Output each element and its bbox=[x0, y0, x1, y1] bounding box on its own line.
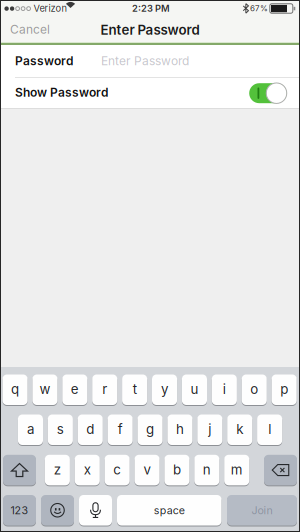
staticText: z bbox=[54, 462, 61, 477]
staticText: p bbox=[280, 381, 288, 397]
button[interactable]: l bbox=[257, 414, 282, 446]
staticText: 123 bbox=[10, 504, 28, 517]
staticText: m bbox=[231, 462, 243, 477]
button[interactable]: z bbox=[45, 455, 70, 486]
button[interactable]: j bbox=[197, 414, 222, 446]
button[interactable]: w bbox=[32, 374, 57, 406]
staticText: Enter Password bbox=[100, 22, 199, 38]
button[interactable]: space bbox=[117, 495, 221, 526]
button[interactable]: s bbox=[48, 414, 73, 446]
button[interactable]: o bbox=[242, 374, 267, 406]
staticText: u bbox=[190, 381, 198, 397]
button[interactable]: b bbox=[164, 455, 189, 486]
button[interactable]: 123 bbox=[3, 495, 36, 526]
button[interactable] bbox=[3, 455, 36, 486]
staticText: q bbox=[11, 381, 19, 397]
button[interactable]: a bbox=[18, 414, 43, 446]
staticText: Enter Password bbox=[101, 54, 189, 68]
button[interactable] bbox=[41, 495, 74, 526]
button[interactable]: v bbox=[134, 455, 160, 486]
staticText: e bbox=[71, 381, 79, 397]
button[interactable]: f bbox=[108, 414, 133, 446]
staticText: r bbox=[102, 381, 107, 397]
button[interactable]: n bbox=[194, 455, 219, 486]
button[interactable]: e bbox=[62, 374, 87, 406]
staticText: i bbox=[223, 381, 226, 397]
button[interactable]: Join bbox=[227, 495, 297, 526]
staticText: Join bbox=[251, 504, 272, 517]
button[interactable] bbox=[249, 83, 287, 104]
staticText: o bbox=[250, 381, 258, 397]
button[interactable]: k bbox=[227, 414, 252, 446]
staticText: v bbox=[144, 462, 151, 477]
staticText: t bbox=[133, 381, 137, 397]
button[interactable] bbox=[79, 495, 112, 526]
staticText: y bbox=[161, 381, 168, 397]
button[interactable]: r bbox=[92, 374, 117, 406]
button[interactable]: q bbox=[2, 374, 28, 406]
staticText: n bbox=[203, 462, 211, 477]
staticText: c bbox=[113, 462, 121, 477]
staticText: Show Password bbox=[15, 85, 108, 100]
button[interactable]: g bbox=[137, 414, 163, 446]
button[interactable]: m bbox=[224, 455, 249, 486]
staticText: w bbox=[39, 381, 50, 397]
staticText: b bbox=[173, 462, 181, 477]
staticText: l bbox=[268, 421, 271, 437]
button[interactable]: Password bbox=[0, 45, 300, 77]
staticText: a bbox=[27, 421, 34, 437]
button[interactable]: h bbox=[167, 414, 192, 446]
staticText: k bbox=[236, 421, 243, 437]
staticText: 67% bbox=[250, 4, 268, 13]
button[interactable]: u bbox=[182, 374, 207, 406]
staticText: g bbox=[146, 421, 154, 437]
button[interactable]: Cancel bbox=[10, 16, 70, 43]
staticText: x bbox=[84, 462, 91, 477]
button[interactable]: d bbox=[78, 414, 103, 446]
staticText: j bbox=[208, 421, 211, 437]
staticText: 2:23 PM bbox=[132, 3, 170, 14]
button[interactable]: y bbox=[152, 374, 177, 406]
staticText: d bbox=[86, 421, 94, 437]
button[interactable]: p bbox=[272, 374, 297, 406]
staticText: Password bbox=[15, 54, 73, 68]
button[interactable]: x bbox=[75, 455, 100, 486]
button[interactable]: i bbox=[212, 374, 237, 406]
staticText: h bbox=[176, 421, 184, 437]
button[interactable]: c bbox=[105, 455, 130, 486]
staticText: f bbox=[118, 421, 123, 437]
button[interactable] bbox=[264, 455, 297, 486]
staticText: s bbox=[57, 421, 64, 437]
staticText: Verizon bbox=[33, 3, 67, 14]
staticText: space bbox=[154, 504, 185, 517]
staticText: Cancel bbox=[10, 22, 50, 37]
button[interactable]: t bbox=[122, 374, 147, 406]
